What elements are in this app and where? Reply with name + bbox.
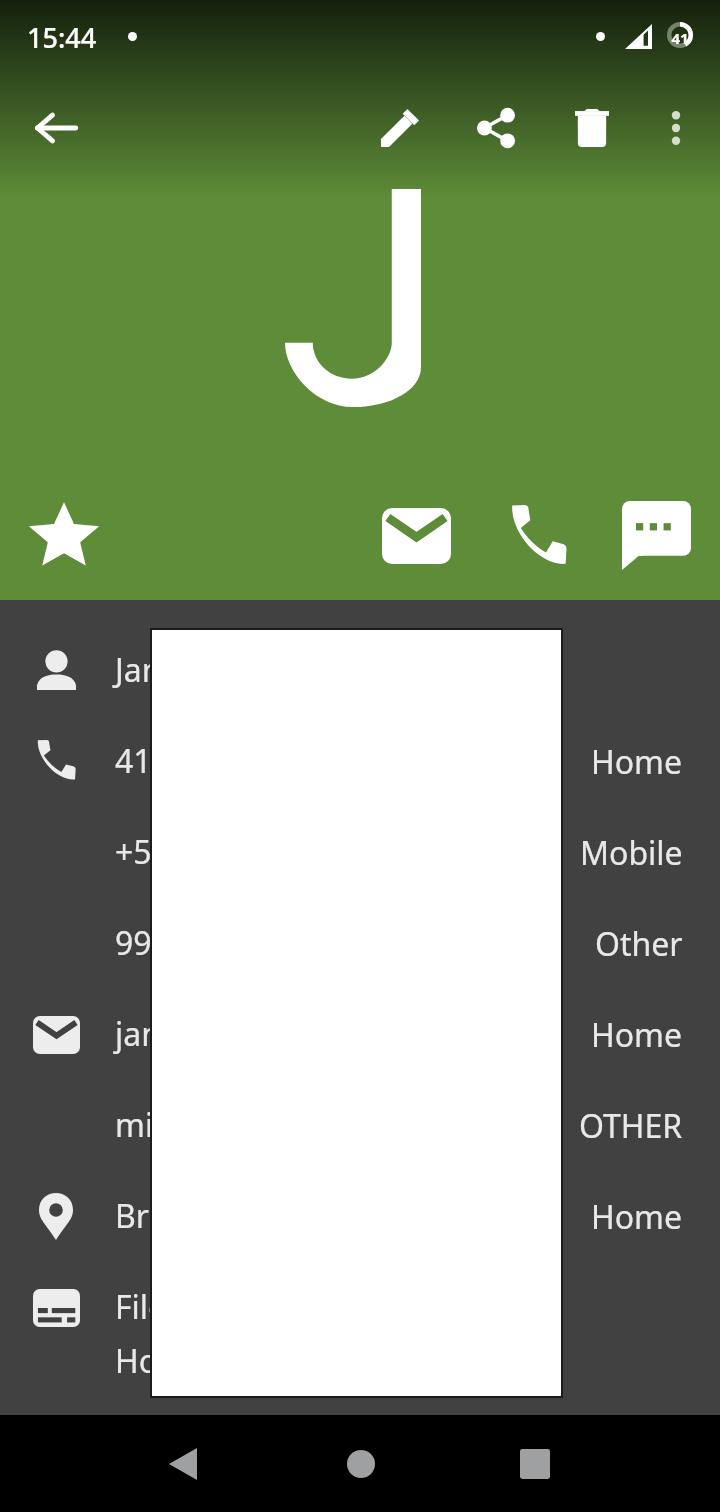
button[interactable]: Email [366,486,466,586]
button[interactable]: Recents [486,1415,583,1512]
button[interactable]: Edit [356,84,444,172]
staticText: Jane Doe [115,648,720,692]
button[interactable]: Jane Doe [0,625,720,716]
button[interactable]: Share [452,84,540,172]
button[interactable]: Call [489,484,589,584]
staticText: OTHER [579,1104,683,1148]
button[interactable]: Delete [548,84,636,172]
staticText: 99 0000 1111 [115,921,598,965]
staticText: mike@example.com [115,1103,582,1147]
staticText: File note [115,1285,244,1329]
staticText: Home [591,1195,683,1239]
button[interactable]: 414-555-0199 [0,716,720,807]
staticText: +55 11 9999-0000 [115,830,583,874]
staticText: 41 [667,28,693,48]
button[interactable]: Message [606,485,706,585]
staticText: Mobile [580,831,683,875]
button[interactable]: +55 11 9999-0000 [0,807,720,898]
button[interactable]: Back [12,84,100,172]
staticText: 15:44 [27,19,97,56]
button[interactable]: mike@example.com [0,1080,720,1171]
staticText: Home address [115,1339,333,1383]
button[interactable]: File note [0,1262,720,1408]
button[interactable]: Favorite [14,484,114,584]
button[interactable]: Bradford Road [0,1171,720,1262]
button[interactable]: More options [632,84,720,172]
button[interactable]: Home [312,1415,409,1512]
staticText: Home [591,740,683,784]
staticText: Other [595,922,683,966]
staticText: 414-555-0199 [115,739,594,783]
button[interactable]: Back [134,1415,231,1512]
staticText: Home [591,1013,683,1057]
button[interactable]: 99 0000 1111 [0,898,720,989]
staticText: Bradford Road [115,1194,594,1238]
staticText: jane@example.com [115,1012,594,1056]
button[interactable]: jane@example.com [0,989,720,1080]
